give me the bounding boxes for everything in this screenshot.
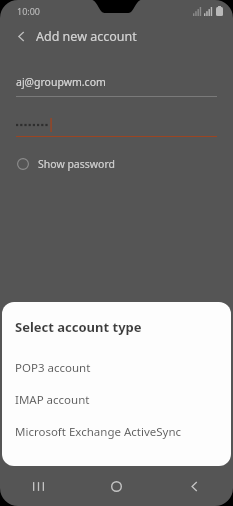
button[interactable]: [16, 114, 217, 136]
staticText: IMAP account: [15, 392, 90, 408]
button[interactable]: Home: [77, 466, 155, 506]
staticText: aj@groupwm.com: [16, 75, 106, 89]
staticText: POP3 account: [15, 360, 91, 376]
staticText: Add new account: [36, 28, 137, 45]
staticText: Microsoft Exchange ActiveSync: [15, 424, 182, 440]
button[interactable]: Show password: [0, 151, 233, 177]
staticText: 10:00: [17, 5, 41, 17]
button[interactable]: Back: [155, 466, 233, 506]
button[interactable]: aj@groupwm.com: [16, 68, 217, 96]
button[interactable]: Back: [10, 25, 32, 47]
button[interactable]: POP3 account: [2, 352, 231, 384]
staticText: Select account type: [15, 318, 142, 336]
button[interactable]: IMAP account: [2, 384, 231, 416]
button[interactable]: Microsoft Exchange ActiveSync: [2, 416, 231, 448]
staticText: Show password: [38, 157, 115, 171]
button[interactable]: Recent apps: [0, 466, 77, 506]
